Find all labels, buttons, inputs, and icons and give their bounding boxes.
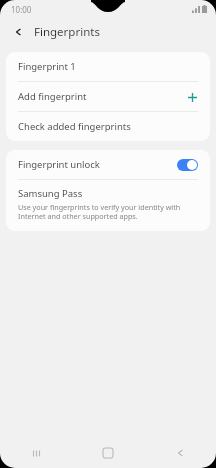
button[interactable]: Back	[144, 438, 216, 468]
staticText: Fingerprint 1	[18, 60, 198, 73]
button[interactable]: Samsung Pass	[6, 180, 210, 231]
button[interactable]: Fingerprint 1	[6, 52, 210, 81]
staticText: Samsung Pass	[18, 187, 83, 200]
button[interactable]: Add fingerprint	[6, 82, 210, 111]
staticText: 10:00	[11, 4, 32, 15]
staticText: Fingerprint unlock	[18, 158, 177, 171]
button[interactable]: Home	[72, 438, 144, 468]
staticText: Use your fingerprints to verify your ide…	[18, 202, 196, 222]
button[interactable]: Fingerprint unlock	[6, 150, 210, 179]
button[interactable]: Check added fingerprints	[6, 112, 210, 141]
button[interactable]: Recents	[0, 438, 72, 468]
staticText: Add fingerprint	[18, 90, 186, 103]
staticText: Fingerprints	[34, 24, 100, 40]
staticText: Check added fingerprints	[18, 120, 198, 133]
button[interactable]: Navigate up	[9, 23, 27, 41]
